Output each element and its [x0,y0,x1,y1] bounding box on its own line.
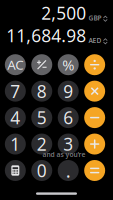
button[interactable]: Divide [84,54,105,75]
button[interactable]: 6 [58,107,79,128]
button[interactable]: Equals [84,160,105,181]
staticText: 5 [37,106,47,129]
staticText: AC [7,56,23,73]
staticText: 4 [10,106,20,129]
button[interactable]: 8 [31,81,52,102]
staticText: 0 [37,159,47,182]
button[interactable]: 1 [5,133,26,154]
button[interactable]: % [58,54,79,75]
button[interactable]: Multiply [84,81,105,102]
button[interactable]: 9 [58,81,79,102]
staticText: 6 [63,106,73,129]
button[interactable]: 2 [31,133,52,154]
staticText: % [62,55,74,74]
staticText: AED [88,36,101,45]
button[interactable]: 3 [58,133,79,154]
button[interactable]: . [58,160,79,181]
button[interactable]: 2,500 [5,5,107,20]
button[interactable]: 5 [31,107,52,128]
button[interactable]: 11,684.98 [5,28,107,43]
staticText: 9 [63,80,73,103]
staticText: and as you're [42,150,85,159]
button[interactable]: Add [84,133,105,154]
button[interactable]: Calculator [5,160,26,181]
staticText: 8 [37,80,47,103]
button[interactable]: Subtract [84,107,105,128]
staticText: 7 [10,80,20,103]
staticText: GBP [88,13,101,22]
button[interactable]: AC [5,54,26,75]
button[interactable]: 0 [31,160,52,181]
button[interactable]: Toggle sign [31,54,52,75]
staticText: . [66,158,71,183]
staticText: 11,684.98 [6,24,86,47]
button[interactable]: 7 [5,81,26,102]
staticText: 1 [10,132,20,155]
button[interactable]: 4 [5,107,26,128]
staticText: 2,500 [41,1,86,24]
staticText: 2 [37,132,47,155]
staticText: 3 [63,132,73,155]
